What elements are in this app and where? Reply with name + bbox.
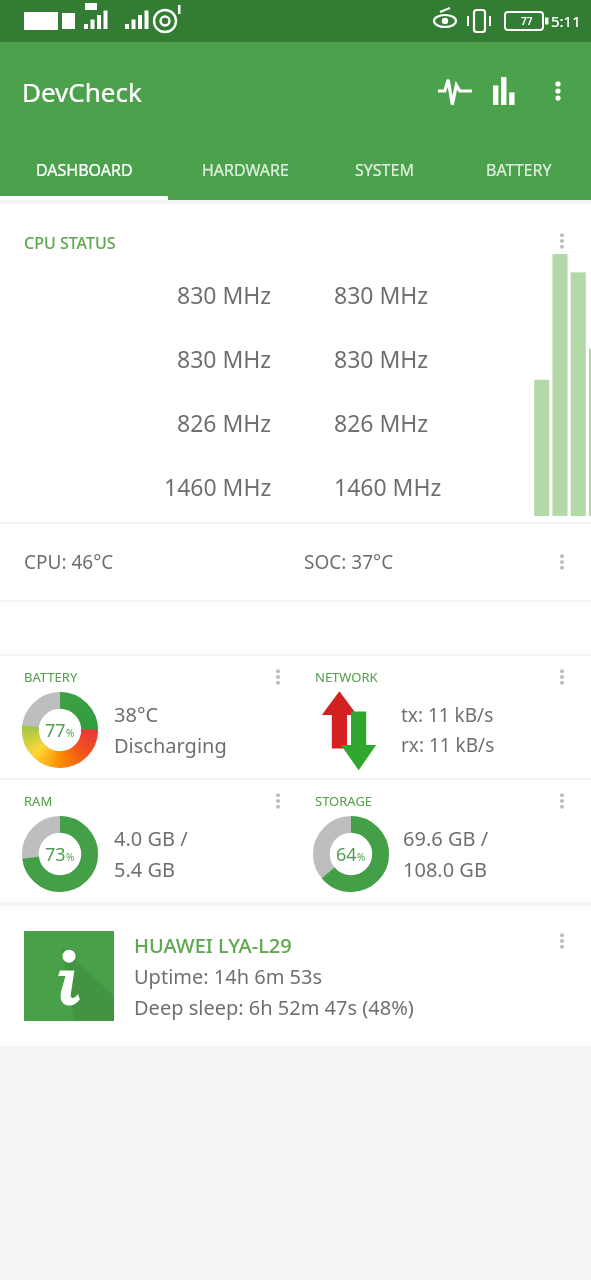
staticText: HUAWEI LYA-L29: [134, 932, 292, 959]
staticText: 830 MHz: [177, 279, 272, 310]
staticText: 5:11: [551, 11, 581, 31]
staticText: 5.4 GB: [114, 856, 175, 883]
staticText: 77: [521, 14, 533, 28]
button[interactable]: CPU STATUS: [0, 204, 591, 522]
staticText: DASHBOARD: [36, 159, 133, 181]
button[interactable]: SYSTEM: [323, 140, 446, 200]
button[interactable]: CPU: 46°C: [0, 524, 591, 600]
button[interactable]: Card menu: [547, 662, 577, 692]
staticText: RAM: [24, 792, 53, 810]
button[interactable]: BATTERY: [446, 140, 591, 200]
staticText: 4.0 GB /: [114, 825, 188, 852]
staticText: %: [66, 726, 75, 740]
staticText: 826 MHz: [334, 407, 429, 438]
staticText: 77: [45, 718, 66, 743]
staticText: 830 MHz: [177, 343, 272, 374]
staticText: 1460 MHz: [164, 471, 272, 502]
staticText: %: [66, 850, 75, 864]
button[interactable]: RAM: [0, 780, 295, 902]
button[interactable]: BATTERY: [0, 656, 295, 778]
staticText: SOC: 37°C: [304, 549, 394, 575]
staticText: NETWORK: [315, 668, 378, 686]
staticText: 73: [45, 842, 66, 867]
staticText: BATTERY: [486, 159, 552, 181]
staticText: 830 MHz: [334, 279, 429, 310]
staticText: 69.6 GB /: [403, 825, 489, 852]
staticText: HARDWARE: [202, 159, 289, 181]
staticText: Deep sleep: 6h 52m 47s (48%): [134, 994, 414, 1021]
staticText: %: [357, 850, 366, 864]
button[interactable]: Monitor: [429, 65, 481, 117]
button[interactable]: More options: [533, 66, 583, 116]
staticText: Discharging: [114, 732, 227, 759]
staticText: 830 MHz: [334, 343, 429, 374]
button[interactable]: HARDWARE: [168, 140, 323, 200]
staticText: 38°C: [114, 701, 159, 728]
button[interactable]: Card menu: [547, 926, 577, 956]
staticText: BATTERY: [24, 668, 78, 686]
button[interactable]: STORAGE: [295, 780, 591, 902]
button[interactable]: Card menu: [547, 547, 577, 577]
button[interactable]: NETWORK: [295, 656, 591, 778]
staticText: tx: 11 kB/s: [401, 702, 494, 728]
button[interactable]: DASHBOARD: [0, 140, 168, 200]
staticText: 1460 MHz: [334, 471, 442, 502]
staticText: SYSTEM: [355, 159, 414, 181]
staticText: CPU: 46°C: [24, 549, 114, 575]
button[interactable]: Card menu: [547, 226, 577, 256]
button[interactable]: Card menu: [547, 786, 577, 816]
staticText: CPU STATUS: [24, 232, 116, 254]
staticText: STORAGE: [315, 792, 373, 810]
staticText: 826 MHz: [177, 407, 272, 438]
staticText: 108.0 GB: [403, 856, 487, 883]
button[interactable]: Card menu: [263, 662, 293, 692]
staticText: Uptime: 14h 6m 53s: [134, 963, 323, 990]
button[interactable]: Card menu: [263, 786, 293, 816]
staticText: 64: [336, 842, 357, 867]
button[interactable]: HUAWEI LYA-L29: [0, 906, 591, 1046]
staticText: rx: 11 kB/s: [401, 732, 495, 758]
button[interactable]: Statistics: [481, 65, 533, 117]
staticText: DevCheck: [22, 74, 142, 109]
